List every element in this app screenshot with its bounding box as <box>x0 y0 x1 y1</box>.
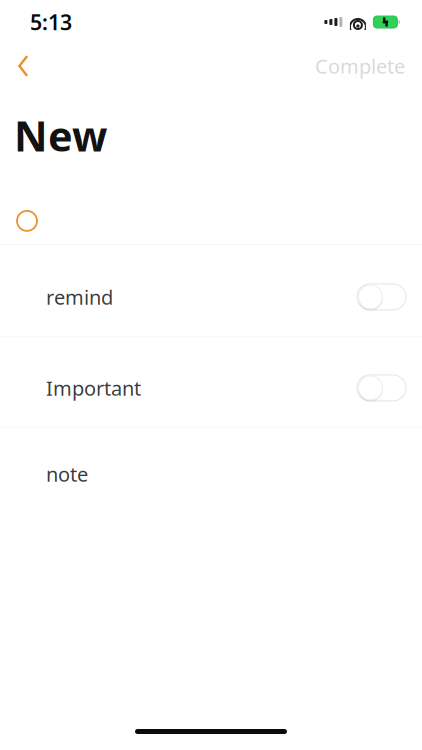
staticText: New <box>14 108 107 163</box>
button[interactable]: remind <box>0 282 422 312</box>
staticText: 5:13 <box>30 8 72 36</box>
staticText: note <box>46 461 88 487</box>
button[interactable]: Important <box>0 373 422 403</box>
staticText: Important <box>46 375 141 401</box>
staticText: remind <box>46 284 113 310</box>
button[interactable]: Complete <box>303 46 417 86</box>
staticText: Complete <box>315 53 405 79</box>
button[interactable]: Back <box>0 46 46 86</box>
